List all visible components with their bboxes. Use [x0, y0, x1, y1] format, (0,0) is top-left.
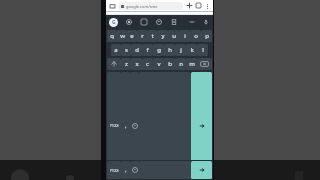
staticText: o — [194, 32, 198, 40]
button[interactable]: d — [131, 44, 142, 56]
staticText: ?123 — [110, 123, 119, 128]
button[interactable]: w — [117, 30, 127, 42]
button[interactable]: GIF — [140, 18, 148, 26]
button[interactable]: z — [121, 58, 131, 70]
button[interactable]: v — [153, 58, 164, 70]
staticText: l — [202, 46, 204, 54]
button[interactable]: y — [157, 30, 168, 42]
button[interactable]: s — [121, 44, 131, 56]
button[interactable]: q — [107, 30, 117, 42]
button[interactable]: New tab — [185, 1, 194, 10]
staticText: s — [125, 46, 128, 54]
button[interactable]: Clipboard — [170, 18, 178, 26]
button[interactable]: Backspace — [197, 58, 212, 70]
staticText: b — [168, 60, 172, 68]
button[interactable]: i — [179, 30, 190, 42]
button[interactable]: Emoji — [130, 72, 139, 179]
staticText: u — [172, 32, 176, 40]
staticText: x — [135, 60, 139, 68]
staticText: a — [114, 46, 118, 54]
staticText: y — [161, 32, 165, 40]
staticText: r — [141, 32, 144, 40]
button[interactable]: Enter — [191, 72, 212, 179]
button[interactable]: One-handed mode — [188, 18, 196, 26]
button[interactable]: , — [121, 72, 130, 179]
button[interactable]: More options — [203, 2, 211, 10]
button[interactable]: Settings — [125, 18, 133, 26]
button[interactable]: Switch tabs — [194, 1, 203, 10]
button[interactable]: j — [175, 44, 186, 56]
staticText: z — [125, 60, 128, 68]
staticText: google.com/sme — [126, 4, 158, 9]
staticText: k — [190, 46, 194, 54]
button[interactable]: google.com/sme — [118, 2, 183, 10]
staticText: w — [120, 32, 125, 40]
button[interactable]: a — [111, 44, 121, 56]
button[interactable]: Voice input — [202, 18, 210, 26]
button[interactable]: Stickers — [155, 18, 163, 26]
button[interactable]: b — [164, 58, 175, 70]
staticText: d — [135, 46, 139, 54]
button[interactable]: l — [197, 44, 208, 56]
staticText: g — [157, 46, 161, 54]
button[interactable]: k — [186, 44, 197, 56]
button[interactable]: c — [142, 58, 153, 70]
button[interactable]: Home — [108, 1, 117, 10]
staticText: i — [184, 32, 186, 40]
button[interactable]: h — [164, 44, 175, 56]
button[interactable]: Emoji — [130, 161, 139, 179]
button[interactable]: ?123 — [107, 72, 121, 179]
staticText: ?123 — [110, 168, 119, 173]
button[interactable]: Enter — [191, 161, 212, 179]
button[interactable]: m — [186, 58, 197, 70]
staticText: p — [205, 32, 209, 40]
button[interactable]: f — [142, 44, 153, 56]
staticText: c — [146, 60, 149, 68]
button[interactable]: n — [175, 58, 186, 70]
staticText: h — [168, 46, 172, 54]
button[interactable]: Google search — [109, 18, 118, 27]
staticText: v — [157, 60, 161, 68]
staticText: n — [179, 60, 183, 68]
button[interactable]: ?123 — [107, 161, 121, 179]
staticText: f — [146, 46, 149, 54]
button[interactable]: o — [190, 30, 201, 42]
button[interactable]: p — [201, 30, 212, 42]
button[interactable]: t — [147, 30, 157, 42]
staticText: q — [110, 32, 114, 40]
button[interactable]: x — [131, 58, 142, 70]
staticText: G — [112, 19, 116, 26]
staticText: , — [125, 122, 127, 130]
button[interactable]: g — [153, 44, 164, 56]
button[interactable]: r — [137, 30, 147, 42]
staticText: , — [125, 166, 127, 174]
button[interactable]: e — [127, 30, 137, 42]
staticText: j — [180, 46, 182, 54]
staticText: m — [189, 60, 195, 68]
staticText: e — [130, 32, 134, 40]
button[interactable]: u — [168, 30, 179, 42]
button[interactable]: Shift — [107, 58, 121, 70]
staticText: t — [151, 32, 154, 40]
button[interactable]: , — [121, 161, 130, 179]
